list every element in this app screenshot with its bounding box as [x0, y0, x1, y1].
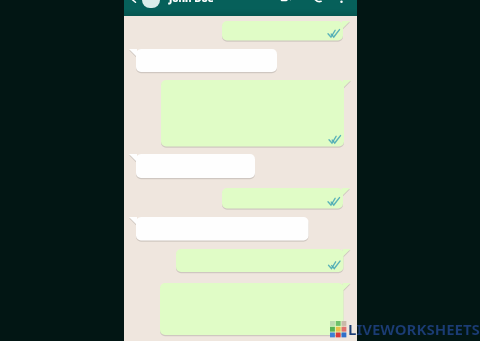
button[interactable]: Sent message — [222, 20, 351, 43]
button[interactable]: Sent message — [161, 79, 352, 149]
button[interactable]: Call — [310, 0, 325, 5]
button[interactable]: Received message — [128, 48, 277, 74]
button[interactable]: Contact avatar — [142, 0, 160, 8]
button[interactable]: Received message — [128, 153, 255, 180]
staticText: LIVEWORKSHEETS — [348, 319, 480, 339]
staticText: John Doe — [169, 0, 214, 5]
button[interactable]: Sent message — [222, 187, 351, 211]
button[interactable]: Sent message — [160, 282, 352, 337]
button[interactable]: More options — [334, 0, 348, 4]
button[interactable]: Video call — [278, 0, 293, 5]
button[interactable]: Sent message — [176, 248, 352, 274]
button[interactable]: Received message — [128, 216, 309, 243]
button[interactable]: Back — [126, 0, 140, 5]
